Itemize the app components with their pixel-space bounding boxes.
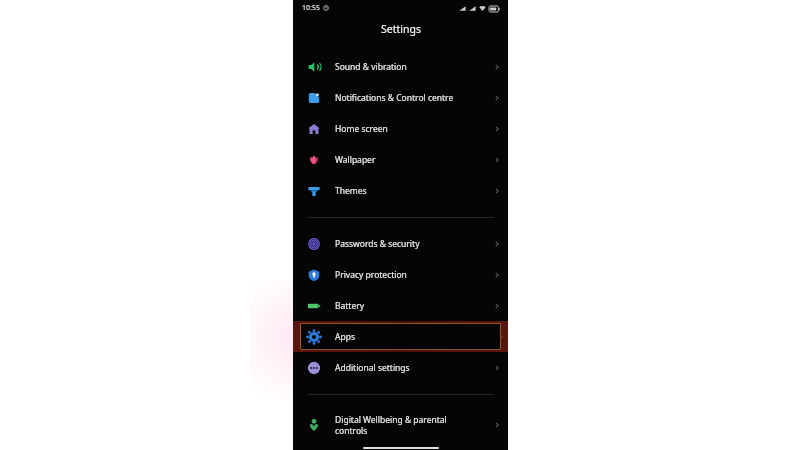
button[interactable]: Themes bbox=[293, 175, 508, 206]
staticText: Additional settings bbox=[335, 362, 492, 374]
staticText: Themes bbox=[335, 185, 492, 197]
button[interactable]: Additional settings bbox=[293, 352, 508, 383]
staticText: Wallpaper bbox=[335, 154, 492, 166]
staticText: Passwords & security bbox=[335, 238, 492, 250]
staticText: Settings bbox=[381, 22, 421, 36]
button[interactable]: Home screen bbox=[293, 113, 508, 144]
staticText: Sound & vibration bbox=[335, 61, 492, 73]
button[interactable]: Notifications & Control centre bbox=[293, 82, 508, 113]
button[interactable]: Sound & vibration bbox=[293, 51, 508, 82]
staticText: Digital Wellbeing & parental controls bbox=[335, 414, 492, 436]
staticText: Home screen bbox=[335, 123, 492, 135]
button[interactable]: Wallpaper bbox=[293, 144, 508, 175]
staticText: Battery bbox=[335, 300, 492, 312]
staticText: 10:55 bbox=[302, 3, 320, 13]
button[interactable]: Digital Wellbeing & parental controls bbox=[293, 405, 508, 445]
button[interactable]: Passwords & security bbox=[293, 228, 508, 259]
staticText: Privacy protection bbox=[335, 269, 492, 281]
staticText: Notifications & Control centre bbox=[335, 92, 492, 104]
button[interactable]: Battery bbox=[293, 290, 508, 321]
button[interactable]: Apps bbox=[300, 323, 501, 350]
button[interactable]: Privacy protection bbox=[293, 259, 508, 290]
staticText: Apps bbox=[335, 331, 355, 343]
